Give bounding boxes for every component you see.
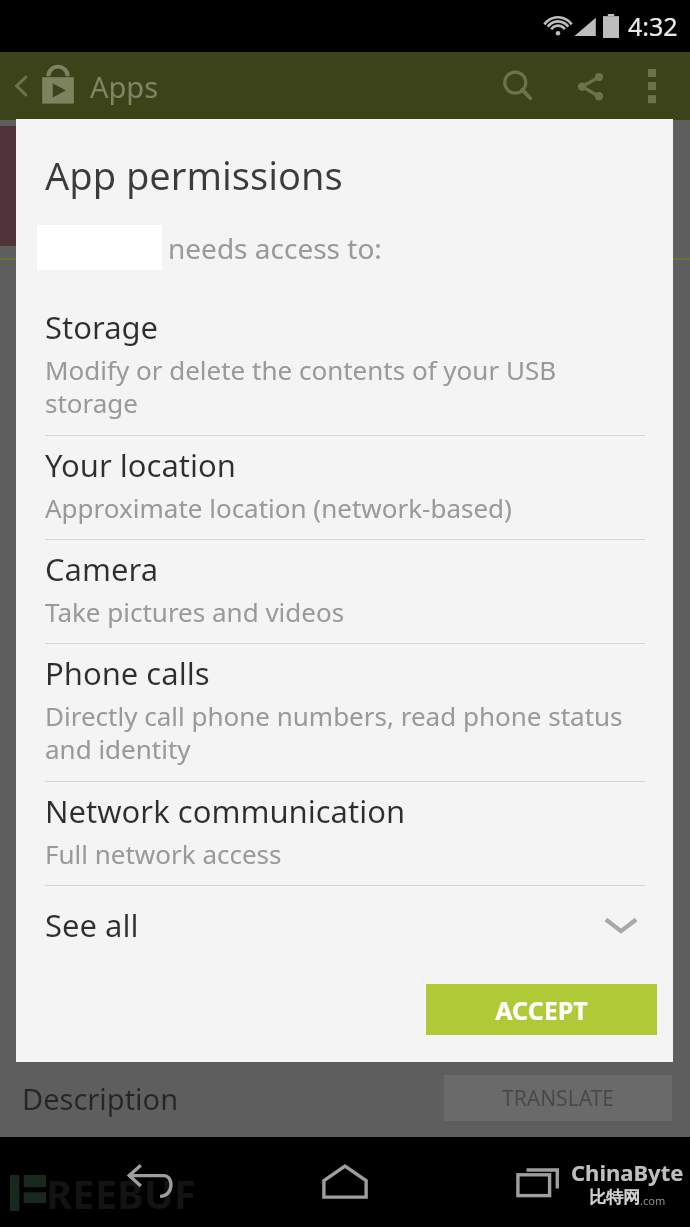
button[interactable]: Recent apps	[495, 1137, 585, 1227]
button[interactable]: Phone calls	[16, 644, 673, 781]
button[interactable]: Your location	[16, 436, 673, 539]
staticText: Take pictures and videos	[45, 594, 345, 629]
staticText: App permissions	[45, 149, 343, 201]
button[interactable]: Camera	[16, 540, 673, 643]
staticText: Network communication	[45, 790, 406, 832]
staticText: 比特网	[589, 1187, 640, 1208]
staticText: Camera	[45, 548, 159, 590]
button[interactable]: TRANSLATE	[444, 1075, 672, 1121]
staticText: See all	[45, 904, 139, 946]
staticText: Description	[22, 1079, 179, 1118]
button[interactable]: Search	[490, 58, 546, 114]
staticText: ChinaByte	[571, 1157, 684, 1187]
staticText: Modify or delete the contents of your US…	[45, 352, 628, 421]
staticText: Phone calls	[45, 652, 210, 694]
button[interactable]: Network communication	[16, 782, 673, 885]
staticText: Your location	[45, 444, 236, 486]
staticText: needs access to:	[168, 229, 382, 267]
staticText: Approximate location (network-based)	[45, 490, 512, 525]
staticText: 4:32	[628, 9, 678, 43]
button[interactable]: Share	[562, 58, 618, 114]
staticText: ACCEPT	[495, 993, 588, 1027]
staticText: Apps	[90, 67, 159, 106]
staticText: Storage	[45, 306, 159, 348]
staticText: Directly call phone numbers, read phone …	[45, 698, 628, 767]
button[interactable]: Home	[300, 1137, 390, 1227]
button[interactable]: ACCEPT	[426, 984, 657, 1035]
button[interactable]: Back	[105, 1137, 195, 1227]
button[interactable]: See all	[16, 886, 673, 964]
staticText: TRANSLATE	[502, 1084, 614, 1113]
button[interactable]: More options	[628, 62, 676, 110]
staticText: .com	[640, 1193, 666, 1208]
staticText: Full network access	[45, 836, 282, 871]
staticText: REEBUF	[46, 1166, 196, 1220]
button[interactable]: Storage	[16, 298, 673, 435]
